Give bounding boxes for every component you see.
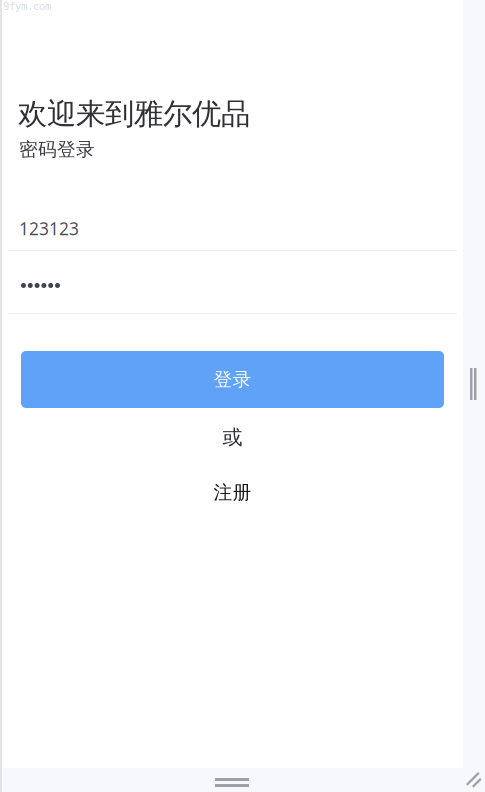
button[interactable]: 注册 — [2, 481, 463, 503]
button[interactable]: 登录 — [21, 351, 444, 408]
staticText: 123123 — [19, 217, 79, 240]
button[interactable]: 123123 — [2, 161, 463, 250]
staticText: 注册 — [213, 481, 251, 504]
staticText: 登录 — [213, 368, 251, 391]
staticText: 或 — [222, 425, 242, 450]
staticText: 欢迎来到雅尔优品 — [18, 96, 250, 132]
staticText: 9fym.com — [3, 0, 51, 12]
staticText: 密码登录 — [19, 138, 95, 161]
button[interactable]: Password — [2, 251, 463, 313]
